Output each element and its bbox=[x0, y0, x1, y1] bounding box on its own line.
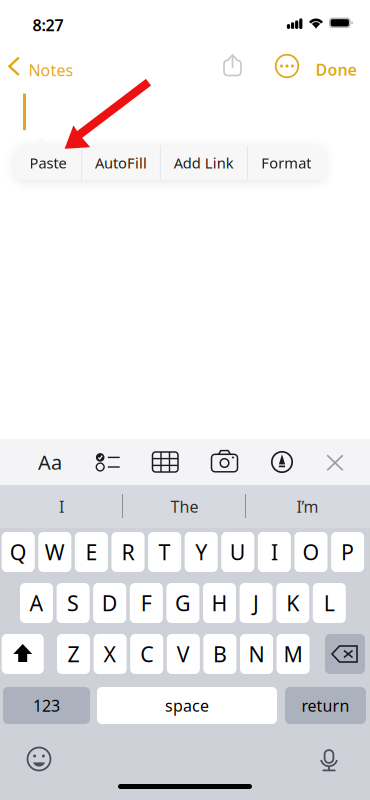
staticText: 8:27 bbox=[32, 14, 63, 36]
staticText: Add Link bbox=[174, 153, 234, 172]
staticText: K bbox=[286, 589, 299, 617]
staticText: B bbox=[213, 640, 227, 668]
button[interactable]: Q bbox=[2, 532, 35, 572]
staticText: Q bbox=[10, 538, 27, 566]
staticText: G bbox=[175, 589, 191, 617]
button[interactable]: Y bbox=[185, 532, 218, 572]
button[interactable]: I bbox=[0, 485, 123, 528]
button[interactable]: N bbox=[240, 634, 273, 674]
button[interactable]: Shift bbox=[2, 634, 44, 674]
staticText: I bbox=[271, 538, 278, 566]
button[interactable]: Done bbox=[315, 44, 359, 88]
button[interactable]: E bbox=[75, 532, 108, 572]
staticText: A bbox=[29, 589, 43, 617]
staticText: O bbox=[302, 538, 319, 566]
button[interactable]: F bbox=[130, 583, 163, 623]
staticText: L bbox=[324, 589, 335, 617]
button[interactable]: Format bbox=[247, 145, 325, 180]
staticText: 123 bbox=[33, 695, 60, 716]
button[interactable]: I’m bbox=[246, 485, 369, 528]
button[interactable]: O bbox=[294, 532, 327, 572]
button[interactable]: W bbox=[38, 532, 71, 572]
staticText: P bbox=[341, 538, 354, 566]
button[interactable]: U bbox=[221, 532, 254, 572]
button[interactable]: AutoFill bbox=[82, 145, 160, 180]
staticText: The bbox=[170, 496, 198, 517]
button[interactable]: Camera bbox=[210, 446, 239, 478]
button[interactable]: K bbox=[276, 583, 309, 623]
button[interactable]: The bbox=[123, 485, 246, 528]
button[interactable]: Emoji bbox=[24, 744, 54, 774]
staticText: V bbox=[177, 640, 190, 668]
button[interactable]: Paste bbox=[14, 145, 82, 180]
staticText: I’m bbox=[296, 496, 318, 517]
staticText: AutoFill bbox=[95, 153, 147, 172]
staticText: U bbox=[230, 538, 246, 566]
staticText: R bbox=[121, 538, 134, 566]
button[interactable]: I bbox=[258, 532, 291, 572]
button[interactable]: H bbox=[203, 583, 236, 623]
button[interactable]: Table bbox=[151, 446, 179, 478]
staticText: T bbox=[159, 538, 171, 566]
staticText: N bbox=[248, 640, 264, 668]
staticText: J bbox=[253, 589, 259, 617]
staticText: Format bbox=[261, 153, 311, 172]
staticText: H bbox=[211, 589, 227, 617]
button[interactable]: X bbox=[94, 634, 127, 674]
button[interactable]: C bbox=[130, 634, 163, 674]
staticText: M bbox=[284, 640, 303, 668]
button[interactable]: S bbox=[57, 583, 90, 623]
button[interactable]: Markup bbox=[269, 446, 295, 478]
button[interactable]: Notes bbox=[4, 44, 96, 88]
staticText: S bbox=[67, 589, 79, 617]
button[interactable]: G bbox=[166, 583, 199, 623]
button[interactable]: Add Link bbox=[160, 145, 247, 180]
staticText: return bbox=[301, 695, 349, 716]
button[interactable]: R bbox=[111, 532, 144, 572]
staticText: Done bbox=[315, 59, 356, 80]
button[interactable]: space bbox=[97, 687, 277, 724]
staticText: X bbox=[104, 640, 117, 668]
staticText: C bbox=[140, 640, 153, 668]
staticText: D bbox=[102, 589, 118, 617]
button[interactable]: Share bbox=[218, 50, 250, 82]
button[interactable]: P bbox=[331, 532, 364, 572]
staticText: Z bbox=[67, 640, 79, 668]
staticText: I bbox=[59, 496, 64, 517]
button[interactable]: More bbox=[274, 53, 300, 79]
button[interactable]: Text format bbox=[30, 446, 70, 478]
button[interactable]: Delete bbox=[325, 634, 365, 674]
button[interactable]: return bbox=[285, 687, 366, 724]
button[interactable]: V bbox=[167, 634, 200, 674]
staticText: Y bbox=[195, 538, 207, 566]
button[interactable]: T bbox=[148, 532, 181, 572]
button[interactable]: Close bbox=[324, 446, 346, 478]
staticText: E bbox=[85, 538, 97, 566]
button[interactable]: L bbox=[313, 583, 346, 623]
button[interactable]: A bbox=[20, 583, 53, 623]
button[interactable]: J bbox=[240, 583, 273, 623]
staticText: Aa bbox=[38, 449, 62, 475]
button[interactable]: 123 bbox=[3, 687, 90, 724]
button[interactable]: Dictation bbox=[314, 744, 344, 774]
button[interactable]: M bbox=[277, 634, 310, 674]
button[interactable]: Checklist bbox=[92, 446, 121, 478]
staticText: W bbox=[45, 538, 65, 566]
staticText: space bbox=[165, 695, 209, 716]
staticText: Notes bbox=[28, 59, 73, 81]
staticText: Paste bbox=[29, 153, 66, 172]
button[interactable]: Z bbox=[57, 634, 90, 674]
button[interactable]: B bbox=[203, 634, 236, 674]
button[interactable]: D bbox=[93, 583, 126, 623]
staticText: F bbox=[141, 589, 152, 617]
